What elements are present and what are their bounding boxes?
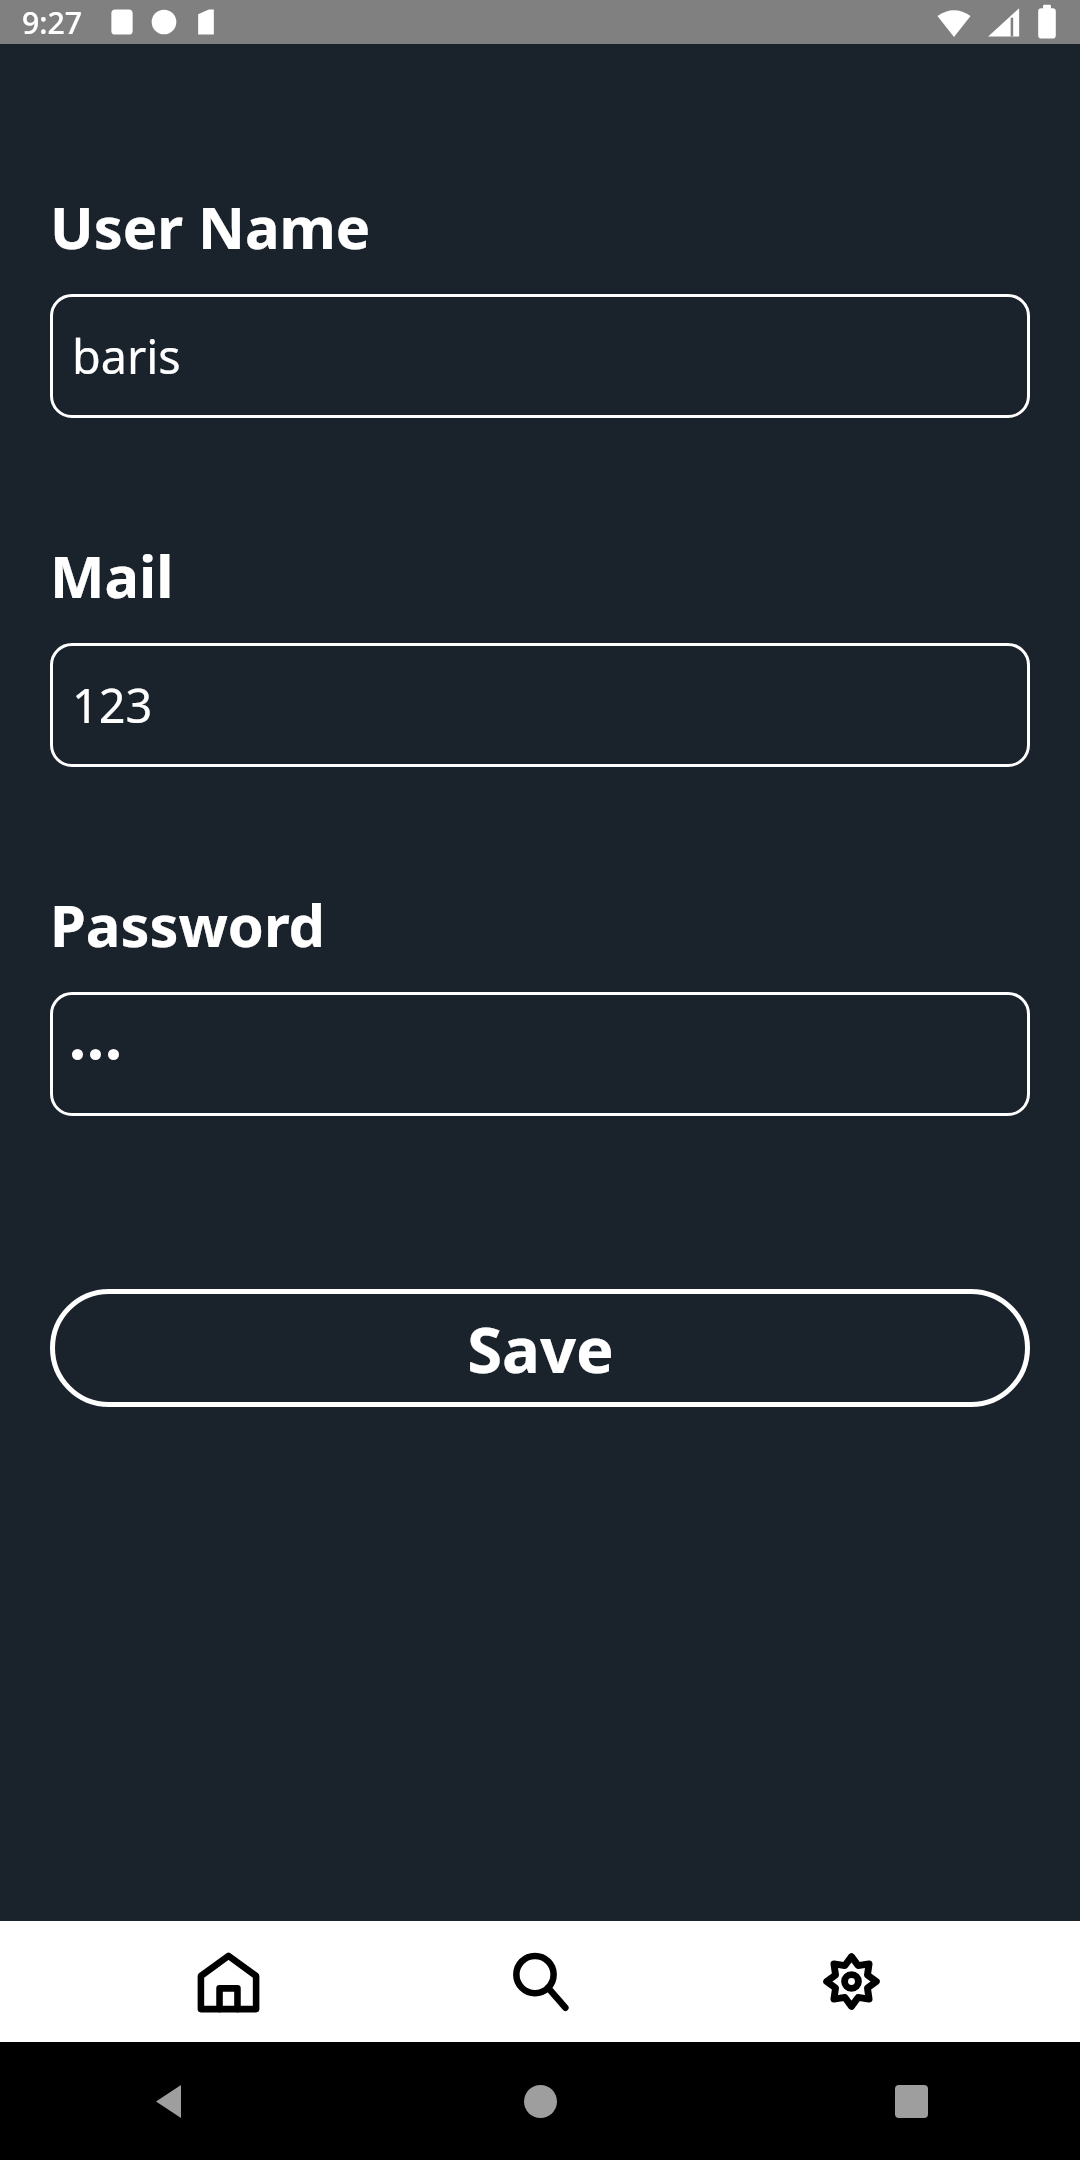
button[interactable]: Search: [458, 1921, 623, 2042]
staticText: Mail: [50, 536, 174, 615]
button[interactable]: baris: [50, 294, 1030, 418]
button[interactable]: 123: [50, 643, 1030, 767]
staticText: Save: [467, 1305, 614, 1391]
staticText: 123: [72, 673, 153, 737]
staticText: Password: [50, 885, 326, 964]
staticText: User Name: [50, 187, 371, 266]
button[interactable]: Home: [146, 1921, 311, 2042]
button[interactable]: Back: [127, 2060, 210, 2143]
button[interactable]: Home: [499, 2060, 582, 2143]
button[interactable]: [50, 992, 1030, 1116]
staticText: baris: [72, 324, 181, 388]
button[interactable]: Settings: [769, 1921, 934, 2042]
staticText: 9:27: [22, 2, 83, 43]
button[interactable]: Save: [50, 1289, 1030, 1407]
button[interactable]: Recent apps: [870, 2060, 953, 2143]
